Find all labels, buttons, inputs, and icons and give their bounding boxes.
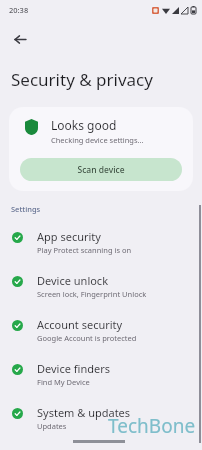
staticText: Device unlock <box>37 273 109 288</box>
staticText: App security <box>37 229 101 244</box>
staticText: Scan device <box>77 164 125 176</box>
staticText: Updates <box>37 421 67 431</box>
staticText: Device finders <box>37 361 110 376</box>
button[interactable]: Device unlock <box>0 266 202 306</box>
staticText: 20:38 <box>9 5 29 15</box>
staticText: Play Protect scanning is on <box>37 245 132 255</box>
button[interactable]: System & updates <box>0 398 202 438</box>
button[interactable]: Account security <box>0 310 202 350</box>
button[interactable]: Back <box>5 24 35 54</box>
staticText: TechBone <box>108 413 196 439</box>
staticText: Find My Device <box>37 377 90 387</box>
staticText: System & updates <box>37 405 131 420</box>
staticText: Screen lock, Fingerprint Unlock <box>37 289 147 299</box>
staticText: Google Account is protected <box>37 333 137 343</box>
button[interactable]: Device finders <box>0 354 202 394</box>
staticText: Settings <box>11 204 41 214</box>
staticText: Account security <box>37 317 123 332</box>
button[interactable]: App security <box>0 222 202 262</box>
staticText: Checking device settings... <box>51 135 144 145</box>
staticText: Looks good <box>51 117 117 133</box>
staticText: Security & privacy <box>11 68 153 91</box>
button[interactable]: Scan device <box>20 158 182 181</box>
